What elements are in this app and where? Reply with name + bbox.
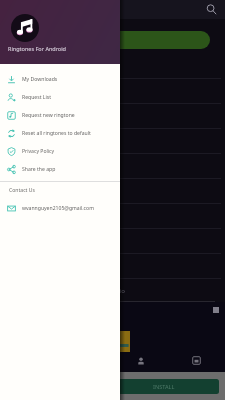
staticText: INSTALL <box>153 383 175 390</box>
button[interactable] <box>0 54 225 79</box>
button[interactable]: My Downloads <box>0 70 120 88</box>
staticText: My Downloads <box>22 76 58 83</box>
staticText: wvannguyen2105@gmail.com <box>22 205 94 212</box>
staticText: Reset all ringtones to default <box>22 130 91 137</box>
button[interactable]: Gallery <box>192 356 201 365</box>
button[interactable]: wvannguyen2105@gmail.com <box>0 199 120 217</box>
button[interactable] <box>0 179 225 204</box>
staticText: Ringtones For Android <box>8 45 66 52</box>
button[interactable]: Request List <box>0 88 120 106</box>
button[interactable] <box>0 229 225 254</box>
staticText: Los Del Rio <box>94 287 125 295</box>
button[interactable]: Reset all ringtones to default <box>0 124 120 142</box>
button[interactable] <box>0 204 225 229</box>
button[interactable] <box>8 31 210 49</box>
button[interactable]: Search <box>205 3 218 16</box>
button[interactable] <box>0 129 225 154</box>
button[interactable]: Account <box>137 357 145 365</box>
staticText: Privacy Policy <box>22 148 55 155</box>
button[interactable]: INSTALL <box>6 379 219 394</box>
button[interactable] <box>0 254 225 279</box>
button[interactable] <box>0 79 225 104</box>
staticText: Request new ringtone <box>22 112 75 119</box>
button[interactable]: Share the app <box>0 160 120 178</box>
staticText: Share the app <box>22 166 56 173</box>
button[interactable]: Los Del Rio <box>0 279 225 304</box>
staticText: Contact Us <box>9 187 35 194</box>
staticText: Request List <box>22 94 52 101</box>
button[interactable]: Privacy Policy <box>0 142 120 160</box>
button[interactable]: Request new ringtone <box>0 106 120 124</box>
button[interactable] <box>0 154 225 179</box>
button[interactable] <box>0 104 225 129</box>
